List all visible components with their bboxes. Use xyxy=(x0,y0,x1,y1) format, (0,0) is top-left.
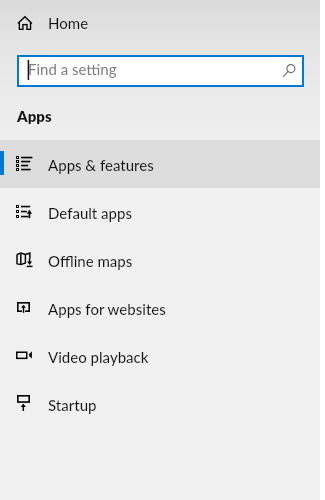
staticText: Apps for websites xyxy=(48,300,166,318)
button[interactable]: Video playback xyxy=(0,332,320,380)
button[interactable]: Offline maps xyxy=(0,236,320,284)
other: Home xyxy=(18,16,32,30)
button[interactable]: Default apps xyxy=(0,188,320,236)
staticText: Find a setting xyxy=(28,60,117,78)
button[interactable]: Apps & features xyxy=(0,140,320,188)
staticText: Startup xyxy=(48,396,97,414)
staticText: Default apps xyxy=(48,204,132,222)
button[interactable]: Find a setting xyxy=(17,55,304,87)
staticText: Apps & features xyxy=(48,156,154,174)
staticText: Home xyxy=(48,14,89,32)
staticText: Apps xyxy=(17,107,52,125)
button[interactable]: Startup xyxy=(0,380,320,428)
button[interactable]: Apps for websites xyxy=(0,284,320,332)
button[interactable]: Home xyxy=(0,0,320,46)
staticText: Video playback xyxy=(48,348,149,366)
staticText: Offline maps xyxy=(48,252,133,270)
